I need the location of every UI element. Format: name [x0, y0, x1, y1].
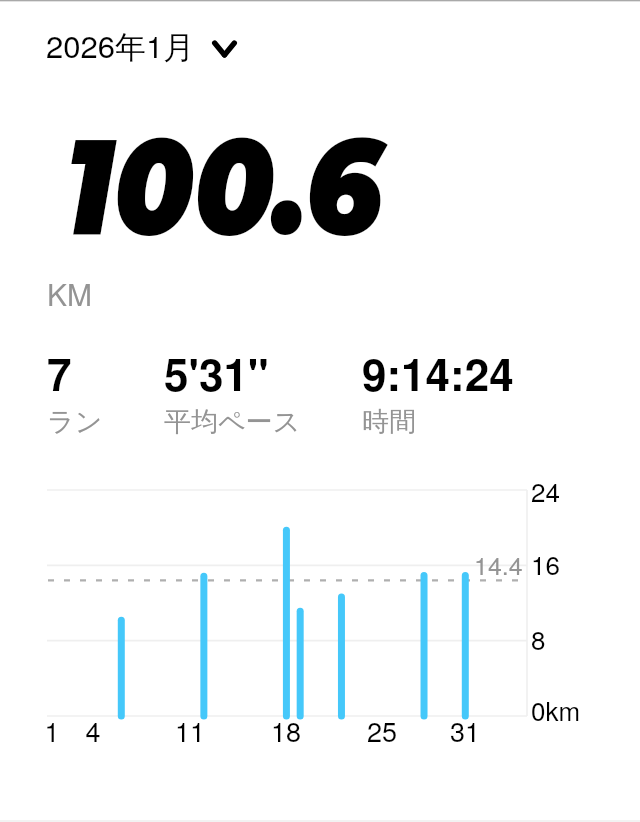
staticText: 100.6	[65, 104, 383, 267]
staticText: 31	[440, 711, 490, 750]
button[interactable]: 7	[47, 341, 103, 439]
staticText: 2026年1月	[46, 22, 195, 67]
staticText: 0km	[531, 691, 581, 728]
staticText: 時間	[362, 405, 416, 439]
staticText: 平均ペース	[164, 405, 301, 439]
staticText: KM	[47, 272, 92, 315]
staticText: 25	[357, 711, 407, 750]
staticText: 5'31''	[164, 341, 269, 404]
button[interactable]: 5'31''	[164, 341, 301, 439]
button[interactable]: 9:14:24	[362, 341, 514, 439]
staticText: 9:14:24	[362, 341, 514, 404]
staticText: ラン	[47, 405, 103, 439]
staticText: 7	[47, 341, 72, 404]
staticText: 18	[261, 711, 311, 750]
button[interactable]: 2026年1月, change month	[46, 22, 237, 67]
staticText: 4	[68, 711, 118, 750]
staticText: 8	[531, 620, 546, 657]
staticText: 11	[165, 711, 215, 750]
staticText: 14.4	[474, 546, 523, 582]
staticText: 24	[531, 472, 560, 509]
staticText: 1	[27, 711, 77, 750]
staticText: 16	[531, 545, 560, 582]
